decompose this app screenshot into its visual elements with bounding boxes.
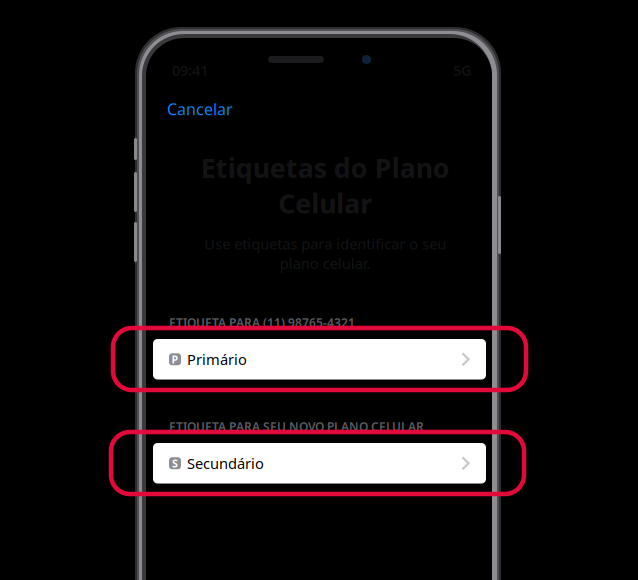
button[interactable]: Primário [153,339,486,379]
staticText: ETIQUETA PARA (11) 98765-4321 [169,314,355,330]
staticText: Use etiquetas para identificar o seu pla… [204,234,446,273]
staticText: 09:41 [172,60,208,80]
staticText: S [172,456,178,470]
staticText: Etiquetas do Plano Celular [200,150,449,221]
staticText: ETIQUETA PARA SEU NOVO PLANO CELULAR [169,418,424,434]
staticText: Cancelar [167,98,233,120]
staticText: Secundário [187,453,264,473]
staticText: Primário [187,349,247,369]
staticText: P [171,352,178,366]
button[interactable]: Secundário [153,443,486,483]
staticText: 5G [453,60,472,80]
button[interactable]: Cancelar [167,98,287,120]
